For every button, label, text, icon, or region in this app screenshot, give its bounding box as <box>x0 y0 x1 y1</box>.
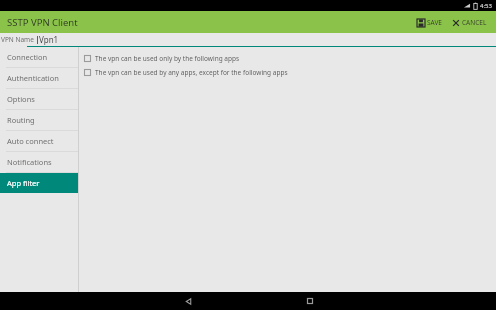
button[interactable]: Home <box>302 293 318 309</box>
button[interactable]: Routing <box>0 110 78 130</box>
staticText: The vpn can be used by any apps, except … <box>95 68 288 77</box>
staticText: Routing <box>7 115 35 125</box>
staticText: VPN Name <box>1 35 34 44</box>
button[interactable]: App filter <box>0 173 78 193</box>
button[interactable]: SAVE <box>414 16 445 29</box>
staticText: Options <box>7 94 35 104</box>
staticText: Vpn1 <box>39 34 59 45</box>
staticText: Authentication <box>7 73 59 83</box>
staticText: Connection <box>7 52 48 62</box>
staticText: Notifications <box>7 157 52 167</box>
staticText: The vpn can be used only by the followin… <box>95 54 240 63</box>
button[interactable]: The vpn can be used by any apps, except … <box>83 67 289 78</box>
button[interactable]: Back <box>180 293 196 309</box>
staticText: 4:53 <box>480 2 492 10</box>
button[interactable]: Authentication <box>0 68 78 88</box>
button[interactable]: Auto connect <box>0 131 78 151</box>
staticText: CANCEL <box>462 18 487 27</box>
staticText: SSTP VPN Client <box>7 16 78 29</box>
button[interactable]: The vpn can be used only by the followin… <box>83 53 241 64</box>
staticText: SAVE <box>427 18 442 27</box>
button[interactable]: Options <box>0 89 78 109</box>
button[interactable]: Connection <box>0 47 78 67</box>
button[interactable]: Notifications <box>0 152 78 172</box>
button[interactable]: CANCEL <box>449 16 490 29</box>
staticText: Auto connect <box>7 136 54 146</box>
staticText: App filter <box>7 178 40 188</box>
